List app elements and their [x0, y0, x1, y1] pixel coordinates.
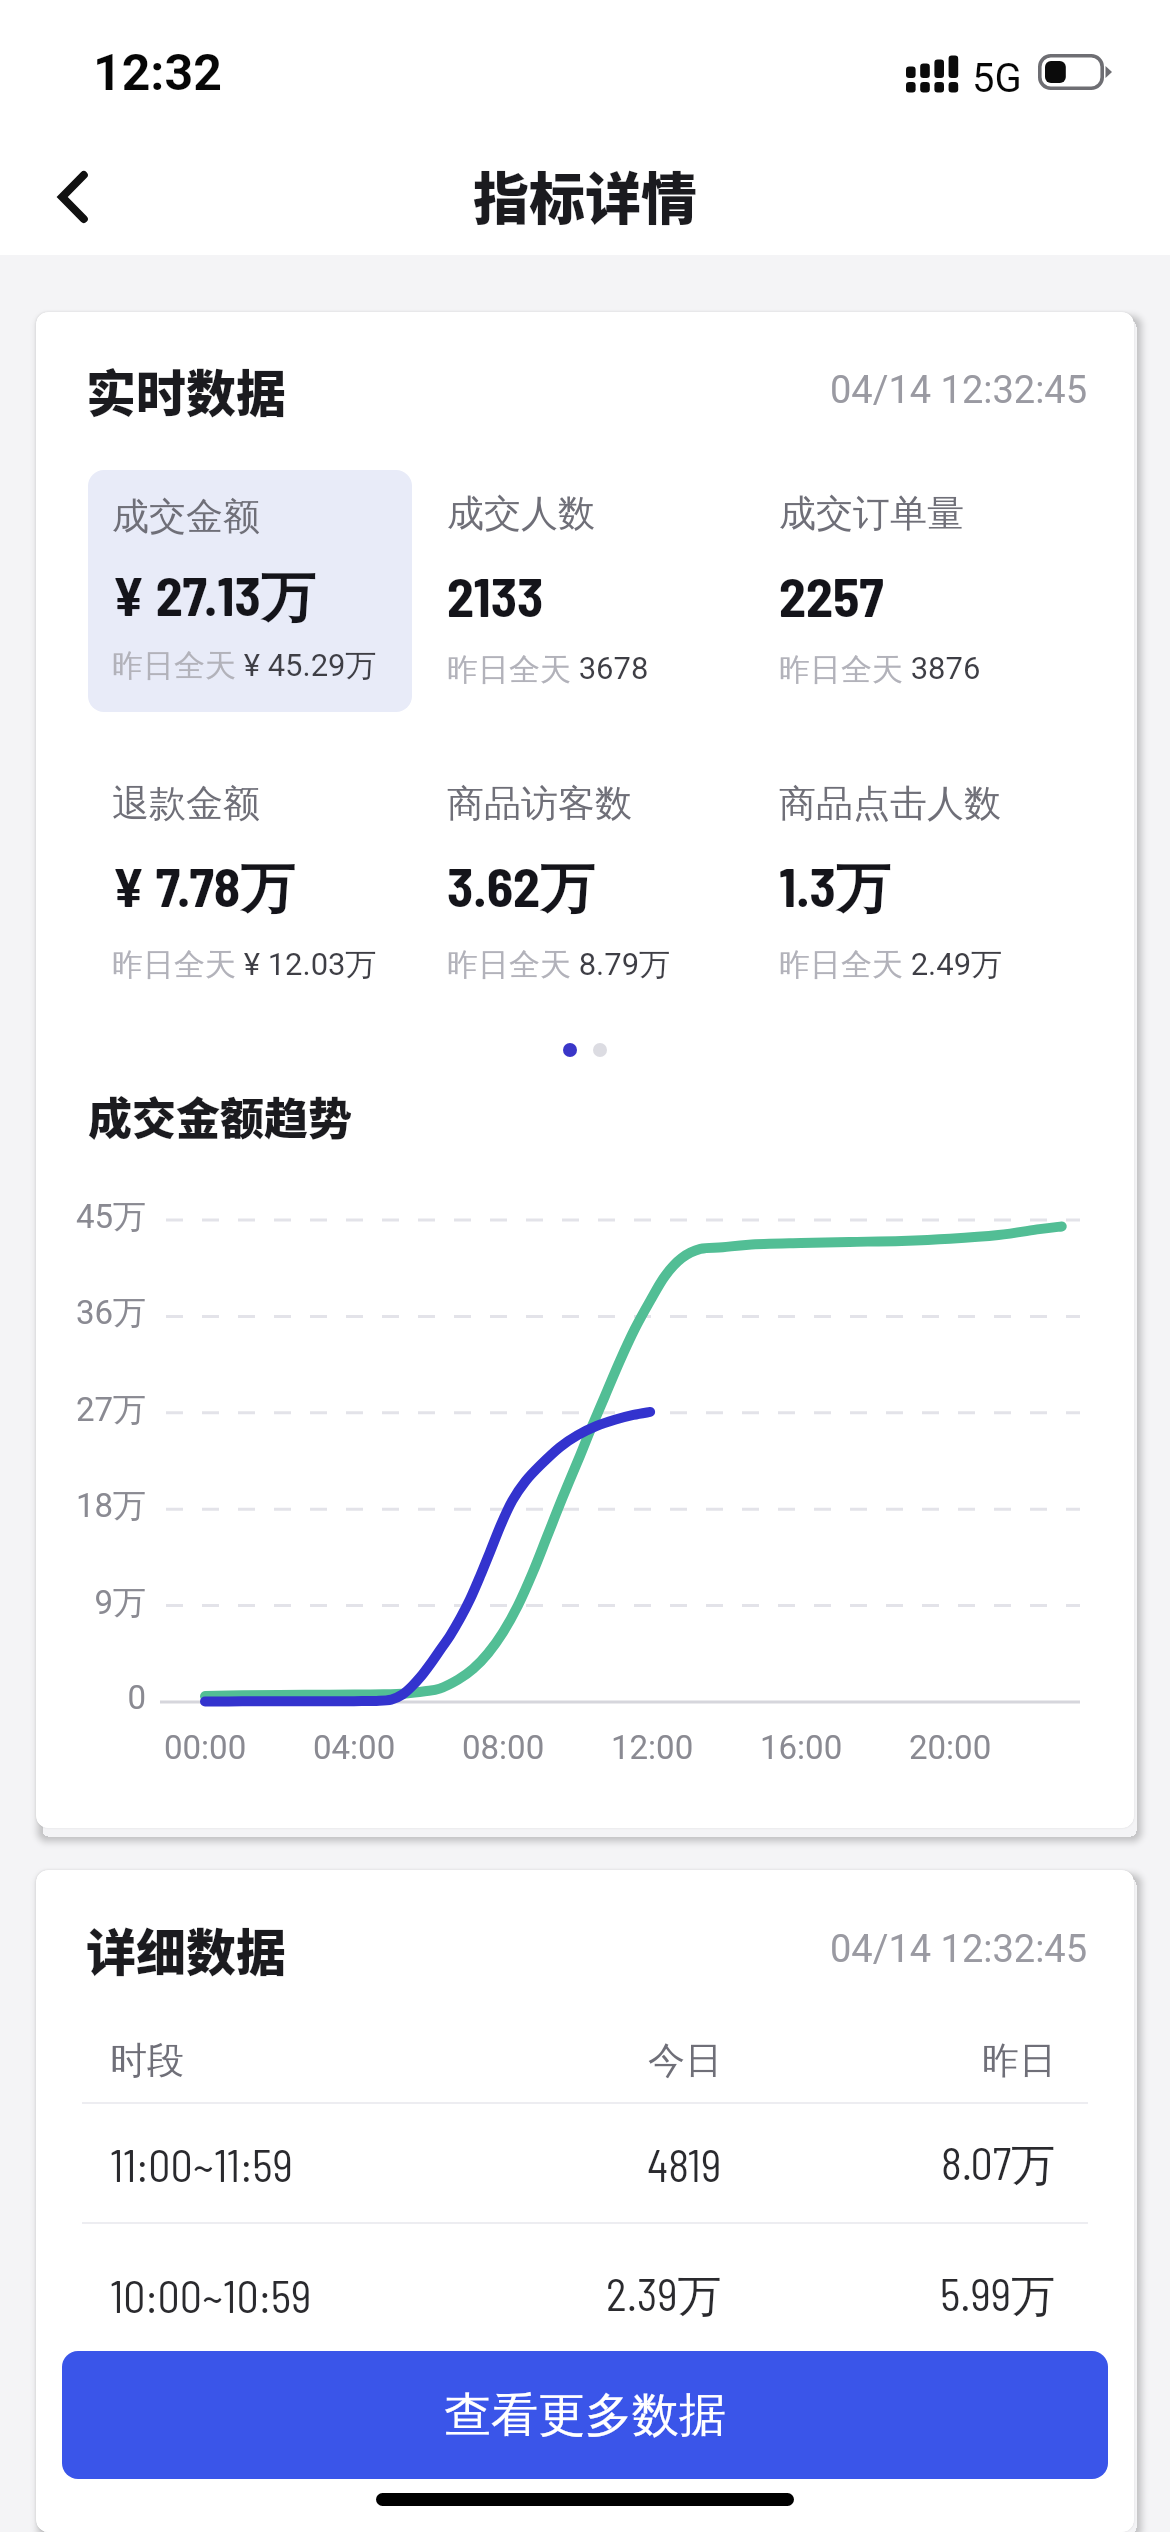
button[interactable]: 10:00~10:59: [36, 2255, 1134, 2335]
staticText: 04/14 12:32:45: [830, 368, 1088, 413]
staticText: ¥ 12.03万: [236, 945, 377, 984]
staticText: 昨日全天: [447, 650, 571, 689]
other: Battery: [1038, 54, 1114, 92]
staticText: 2.39万: [606, 2267, 722, 2324]
other: Signal strength: [906, 54, 960, 94]
staticText: 04/14 12:32:45: [830, 1927, 1088, 1972]
button[interactable]: 成交订单量: [779, 448, 1109, 689]
staticText: 12:00: [611, 1728, 694, 1767]
staticText: 今日: [648, 2037, 722, 2084]
staticText: ¥ 7.78万: [112, 853, 295, 923]
staticText: 昨日全天: [112, 945, 236, 984]
staticText: 5.99万: [940, 2267, 1056, 2324]
staticText: 08:00: [462, 1728, 545, 1767]
staticText: 12:32: [93, 44, 222, 103]
staticText: 成交人数: [447, 490, 595, 537]
staticText: 成交订单量: [779, 490, 964, 537]
staticText: 3678: [571, 650, 649, 686]
staticText: 16:00: [760, 1728, 843, 1767]
button[interactable]: Back: [27, 151, 119, 243]
staticText: 昨日全天: [447, 945, 571, 984]
staticText: 昨日全天: [779, 650, 903, 689]
staticText: 昨日全天: [779, 945, 903, 984]
button[interactable]: 商品访客数: [447, 738, 777, 984]
staticText: ¥ 27.13万: [112, 562, 315, 632]
staticText: 2133: [447, 563, 544, 628]
staticText: 3.62万: [447, 853, 594, 923]
staticText: 昨日全天: [112, 646, 236, 685]
button[interactable]: 11:00~11:59: [36, 2124, 1134, 2204]
staticText: 8.79万: [571, 945, 671, 984]
button[interactable]: 成交人数: [447, 448, 777, 689]
staticText: 昨日: [982, 2037, 1056, 2084]
staticText: 详细数据: [86, 1913, 286, 1985]
staticText: 商品访客数: [447, 780, 632, 827]
staticText: 0: [127, 1678, 146, 1717]
staticText: 实时数据: [86, 354, 286, 426]
button[interactable]: [563, 1043, 577, 1057]
staticText: 11:00~11:59: [110, 2138, 293, 2191]
button[interactable]: 退款金额: [112, 738, 442, 984]
staticText: 1.3万: [779, 853, 890, 923]
staticText: 00:00: [164, 1728, 247, 1767]
staticText: 04:00: [313, 1728, 396, 1767]
button[interactable]: 查看更多数据: [62, 2351, 1108, 2479]
staticText: 退款金额: [112, 780, 260, 827]
staticText: 时段: [110, 2037, 184, 2084]
staticText: 45万: [75, 1196, 146, 1238]
staticText: 商品点击人数: [779, 780, 1001, 827]
staticText: 27万: [75, 1389, 146, 1431]
staticText: 36万: [75, 1292, 146, 1334]
staticText: 8.07万: [941, 2136, 1056, 2193]
staticText: 2.49万: [903, 945, 1003, 984]
button[interactable]: 商品点击人数: [779, 738, 1109, 984]
staticText: 查看更多数据: [444, 2386, 726, 2445]
staticText: ¥ 45.29万: [236, 646, 377, 685]
staticText: 2257: [779, 563, 884, 628]
staticText: 5G: [972, 55, 1022, 102]
staticText: 指标详情: [473, 154, 697, 235]
staticText: 18万: [75, 1485, 146, 1527]
staticText: 9万: [94, 1582, 146, 1624]
staticText: 4819: [647, 2138, 722, 2191]
staticText: 3876: [903, 650, 981, 686]
button[interactable]: 成交金额: [88, 470, 412, 712]
staticText: 20:00: [909, 1728, 992, 1767]
button[interactable]: [593, 1043, 607, 1057]
staticText: 成交金额趋势: [88, 1084, 352, 1148]
staticText: 10:00~10:59: [110, 2269, 312, 2322]
staticText: 成交金额: [112, 493, 260, 540]
